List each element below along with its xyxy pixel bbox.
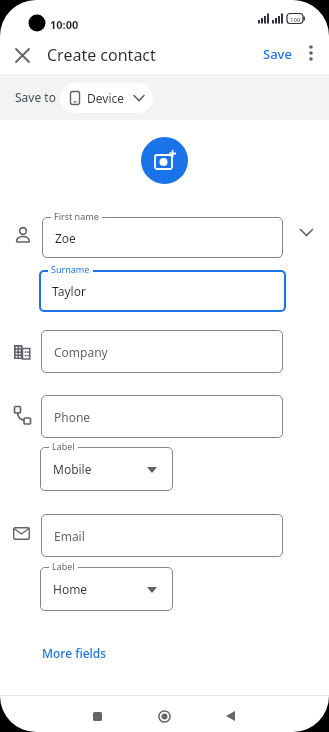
button[interactable]: Device xyxy=(60,83,153,113)
button[interactable] xyxy=(141,137,188,184)
staticText: Zoe xyxy=(55,230,76,246)
button[interactable] xyxy=(9,42,35,68)
button[interactable] xyxy=(218,704,242,728)
staticText: Device xyxy=(87,90,125,106)
staticText: Home xyxy=(53,581,88,597)
staticText: Create contact xyxy=(47,44,156,66)
button[interactable]: More fields xyxy=(42,645,107,661)
button[interactable]: Home xyxy=(40,567,173,611)
staticText: Email xyxy=(54,528,85,544)
button[interactable]: Zoe xyxy=(42,217,283,258)
button[interactable]: Save xyxy=(263,38,292,70)
staticText: Phone xyxy=(54,409,91,425)
staticText: Save xyxy=(263,45,292,63)
button[interactable]: Company xyxy=(41,330,283,373)
button[interactable] xyxy=(152,704,176,728)
button[interactable]: Email xyxy=(41,514,283,557)
staticText: More fields xyxy=(42,645,107,661)
staticText: 10:00 xyxy=(50,17,79,32)
staticText: Surname xyxy=(51,263,90,275)
staticText: Taylor xyxy=(52,283,86,299)
staticText: Company xyxy=(54,344,108,360)
staticText: Label xyxy=(52,440,75,452)
button[interactable] xyxy=(299,41,323,65)
staticText: Label xyxy=(52,560,75,572)
staticText: 100 xyxy=(290,16,301,24)
staticText: Mobile xyxy=(53,461,92,477)
button[interactable]: Taylor xyxy=(39,270,286,312)
button[interactable] xyxy=(85,704,109,728)
staticText: Save to xyxy=(15,89,56,105)
button[interactable]: Phone xyxy=(41,395,283,438)
button[interactable]: Mobile xyxy=(40,447,173,491)
staticText: First name xyxy=(54,210,99,222)
